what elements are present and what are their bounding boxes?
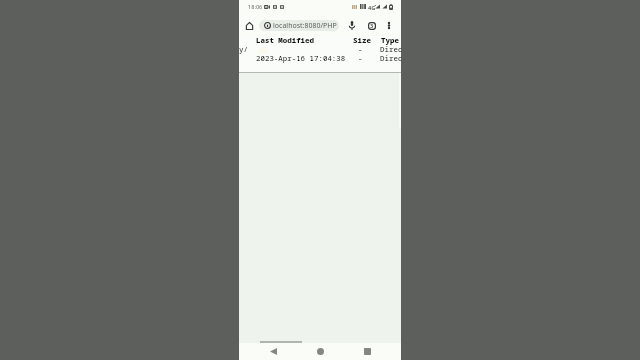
staticText: 2023-Apr-16 17:04:38 (256, 53, 346, 63)
staticText: localhost:8080/PHP (273, 21, 337, 31)
button[interactable]: Home (241, 18, 257, 34)
button[interactable]: Home (308, 343, 332, 360)
button[interactable]: More options (381, 17, 397, 33)
staticText: 18:06 (248, 3, 263, 11)
button[interactable]: Voice search (344, 17, 360, 33)
staticText: Size (353, 35, 371, 45)
staticText: Last Modified (256, 35, 315, 45)
button[interactable]: Switch tabs (364, 18, 380, 34)
button[interactable]: Recent apps (355, 343, 379, 360)
staticText: y/ (239, 44, 248, 54)
staticText: Direc (380, 53, 403, 63)
button[interactable]: Back (261, 343, 285, 360)
staticText: Type (381, 35, 399, 45)
staticText: 4G (368, 4, 376, 12)
staticText: - (358, 44, 363, 54)
button[interactable]: localhost:8080/PHP (259, 20, 339, 31)
staticText: Direc (380, 44, 403, 54)
staticText: - (358, 53, 363, 63)
staticText: 3 (370, 22, 374, 30)
